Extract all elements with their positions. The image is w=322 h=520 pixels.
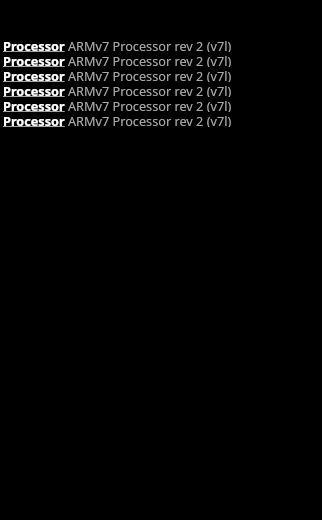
button[interactable]: Processor ARMv7 Processor rev 2 (v7l)	[0, 51, 322, 66]
button[interactable]: Processor ARMv7 Processor rev 2 (v7l)	[0, 66, 322, 81]
staticText: Processor ARMv7 Processor rev 2 (v7l)	[3, 82, 232, 97]
staticText: Processor ARMv7 Processor rev 2 (v7l)	[3, 97, 232, 112]
staticText: Processor ARMv7 Processor rev 2 (v7l)	[3, 67, 232, 82]
staticText: Processor ARMv7 Processor rev 2 (v7l)	[3, 112, 232, 127]
staticText: Processor ARMv7 Processor rev 2 (v7l)	[3, 37, 232, 52]
button[interactable]: Processor ARMv7 Processor rev 2 (v7l)	[0, 96, 322, 111]
button[interactable]: Processor ARMv7 Processor rev 2 (v7l)	[0, 111, 322, 126]
button[interactable]: Processor ARMv7 Processor rev 2 (v7l)	[0, 36, 322, 51]
staticText: Processor ARMv7 Processor rev 2 (v7l)	[3, 52, 232, 67]
button[interactable]: Processor ARMv7 Processor rev 2 (v7l)	[0, 81, 322, 96]
